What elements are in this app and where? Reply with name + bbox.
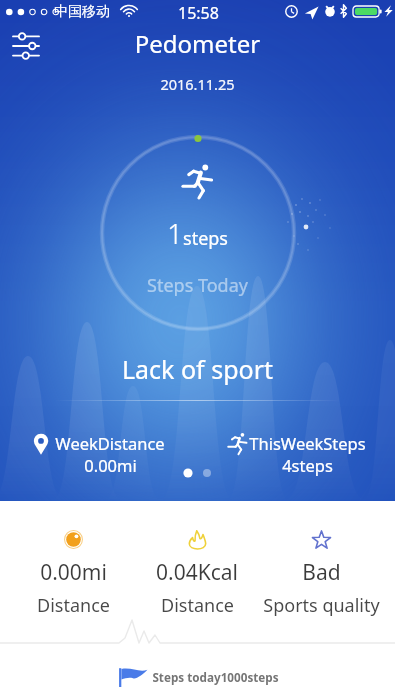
- staticText: 15:58: [178, 2, 219, 24]
- button[interactable]: 0.04Kcal: [135, 530, 259, 618]
- button[interactable]: Bad: [259, 530, 383, 618]
- staticText: Distance: [37, 593, 110, 618]
- staticText: Distance: [161, 593, 234, 618]
- staticText: ThisWeekSteps: [249, 432, 366, 454]
- staticText: Sports quality: [263, 593, 380, 618]
- staticText: Lack of sport: [0, 352, 395, 386]
- button[interactable]: Filter settings: [6, 26, 46, 66]
- button[interactable]: ThisWeekSteps: [227, 432, 366, 476]
- staticText: steps: [183, 226, 228, 251]
- staticText: 0.04Kcal: [156, 558, 238, 587]
- staticText: Steps Today: [0, 273, 395, 298]
- button[interactable]: WeekDistance: [32, 432, 165, 476]
- staticText: 0.00mi: [40, 558, 107, 587]
- staticText: 1: [167, 215, 183, 252]
- staticText: 0.00mi: [84, 454, 137, 476]
- button[interactable]: 0.00mi: [12, 530, 135, 618]
- staticText: Bad: [302, 558, 341, 587]
- staticText: Steps today1000steps: [152, 669, 279, 685]
- staticText: 中国移动: [54, 3, 110, 21]
- staticText: 4steps: [282, 454, 333, 476]
- staticText: 2016.11.25: [0, 74, 395, 94]
- staticText: WeekDistance: [55, 432, 165, 454]
- staticText: Pedometer: [0, 27, 395, 60]
